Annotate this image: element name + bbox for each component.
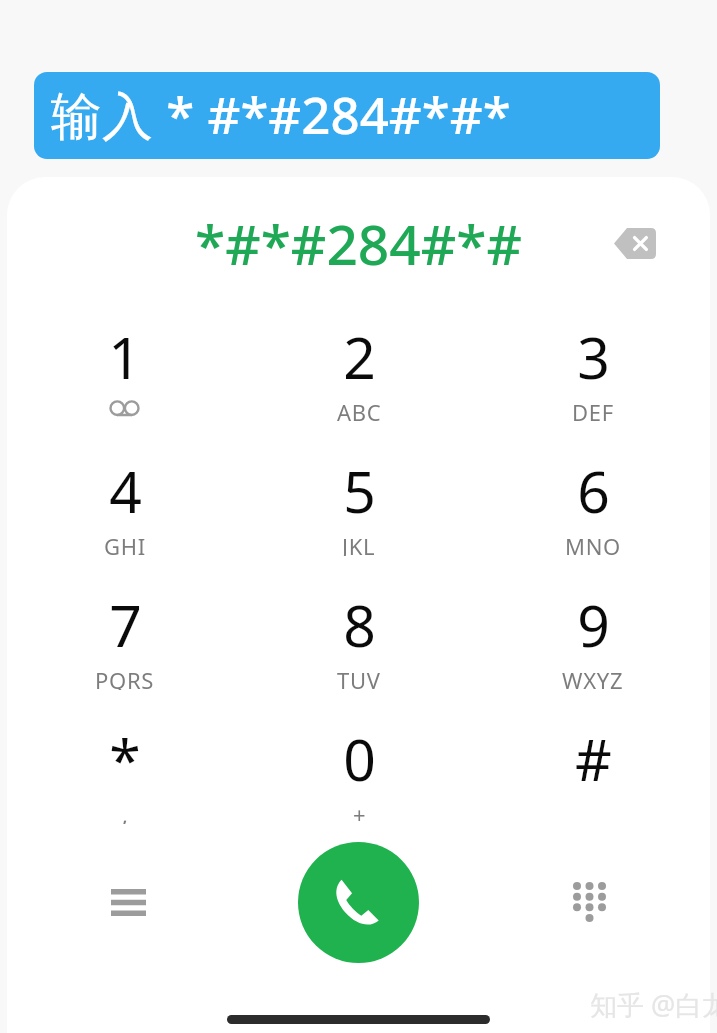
button[interactable]: 6	[476, 437, 710, 571]
button[interactable]: 5	[242, 437, 476, 571]
staticText: 2	[343, 318, 376, 396]
staticText: *	[109, 720, 141, 798]
staticText: 知乎 @白龙	[590, 986, 717, 1023]
button[interactable]: 3	[476, 303, 710, 437]
staticText: WXYZ	[562, 665, 624, 690]
staticText: 7	[109, 586, 142, 664]
button[interactable]: 输入 * #*#284#*#*	[34, 72, 660, 159]
staticText: MNO	[565, 531, 621, 556]
button[interactable]: 2	[242, 303, 476, 437]
staticText: #	[575, 720, 612, 798]
button[interactable]: 9	[476, 571, 710, 705]
staticText: 输入 * #*#284#*#*	[51, 79, 511, 149]
button[interactable]: 1	[7, 303, 242, 437]
button[interactable]: Menu	[91, 865, 165, 939]
staticText: PQRS	[95, 665, 155, 690]
button[interactable]: Call	[298, 842, 419, 963]
staticText: ABC	[337, 397, 382, 422]
staticText: TUV	[337, 665, 381, 690]
button[interactable]: *	[7, 705, 242, 839]
staticText: JKL	[342, 531, 376, 556]
staticText: DEF	[572, 397, 614, 422]
staticText: 3	[577, 318, 610, 396]
staticText: 6	[577, 452, 610, 530]
staticText: 1	[108, 318, 141, 396]
button[interactable]: Dialpad	[552, 865, 626, 939]
button[interactable]: 8	[242, 571, 476, 705]
button[interactable]: 7	[7, 571, 242, 705]
button[interactable]: #	[476, 705, 710, 839]
button[interactable]: 4	[7, 437, 242, 571]
staticText: 8	[343, 586, 376, 664]
button[interactable]: Delete	[606, 214, 664, 272]
staticText: GHI	[104, 531, 146, 556]
staticText: 0	[343, 720, 376, 798]
staticText: *#*#284#*#	[195, 206, 522, 281]
button[interactable]: 0	[242, 705, 476, 839]
staticText: +	[353, 799, 367, 824]
staticText: 4	[109, 452, 142, 530]
staticText: ,	[122, 799, 129, 824]
staticText: 5	[343, 452, 376, 530]
staticText: 9	[577, 586, 610, 664]
